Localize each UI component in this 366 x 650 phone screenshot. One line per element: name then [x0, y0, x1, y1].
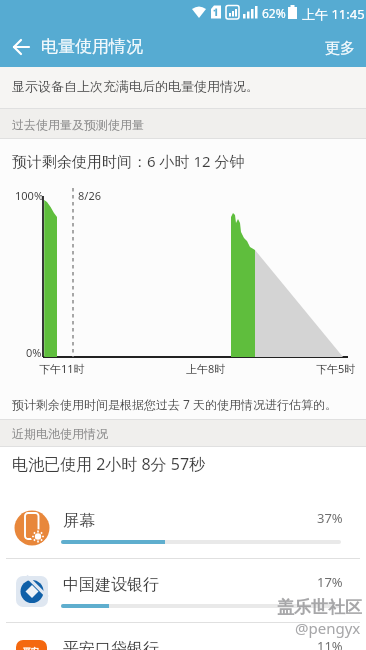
staticText: 近期电池使用情况	[12, 426, 108, 441]
button[interactable]	[0, 28, 44, 67]
staticText: 17%	[317, 573, 343, 591]
staticText: 预计剩余使用时间是根据您过去 7 天的使用情况进行估算的。	[12, 396, 338, 412]
staticText: 100%	[15, 188, 44, 203]
staticText: 8/26	[78, 188, 101, 203]
staticText: 盖乐世社区	[277, 597, 362, 618]
button[interactable]: 屏幕	[0, 494, 366, 558]
staticText: 上午8时	[186, 361, 226, 376]
button[interactable]: 平安	[0, 622, 366, 650]
staticText: 下午5时	[316, 361, 356, 376]
staticText: 中国建设银行	[63, 575, 159, 595]
button[interactable]: 更多	[316, 30, 366, 64]
staticText: 屏幕	[63, 511, 95, 531]
staticText: 下午11时	[39, 361, 85, 376]
staticText: 0%	[26, 345, 42, 360]
staticText: 平安口袋银行	[63, 639, 159, 650]
button[interactable]: 中国建设银行	[0, 558, 366, 622]
staticText: 37%	[317, 509, 343, 527]
staticText: 预计剩余使用时间：6 小时 12 分钟	[12, 151, 245, 171]
staticText: 平安	[23, 646, 39, 650]
staticText: 上午 11:45	[302, 5, 365, 23]
staticText: 更多	[325, 39, 355, 58]
staticText: 11%	[317, 637, 343, 650]
staticText: 电量使用情况	[41, 36, 143, 57]
staticText: 62%	[262, 5, 286, 21]
staticText: 电池已使用 2小时 8分 57秒	[12, 453, 206, 475]
staticText: @pengyx	[295, 618, 361, 638]
staticText: 显示设备自上次充满电后的电量使用情况。	[12, 78, 259, 94]
staticText: 过去使用量及预测使用量	[12, 117, 144, 132]
